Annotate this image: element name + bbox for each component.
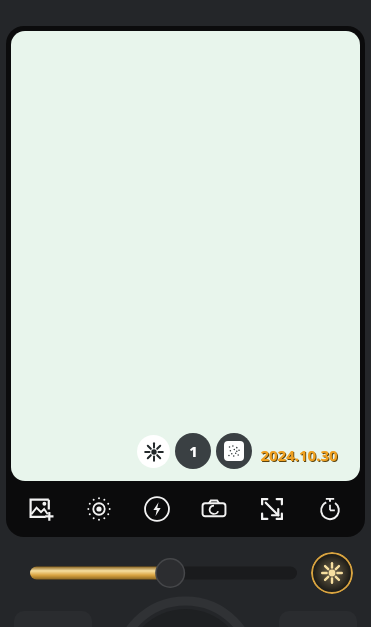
button[interactable]: Brightness slider — [30, 558, 297, 588]
button[interactable]: Fill light — [311, 552, 353, 594]
button[interactable]: Crop — [249, 486, 295, 532]
button[interactable]: Add photo — [18, 486, 64, 532]
button[interactable]: Film grain — [216, 433, 252, 469]
button[interactable]: Exposure — [76, 486, 122, 532]
button[interactable]: Switch camera — [191, 486, 237, 532]
staticText: 2024.10.30 — [261, 446, 339, 466]
staticText: 2024.10.30 — [260, 445, 338, 465]
button[interactable]: Flash — [134, 486, 180, 532]
staticText: 1 — [189, 441, 198, 461]
button[interactable]: Timer off — [307, 486, 353, 532]
button[interactable]: 1 — [175, 433, 211, 469]
button[interactable]: Brightness — [137, 435, 170, 468]
